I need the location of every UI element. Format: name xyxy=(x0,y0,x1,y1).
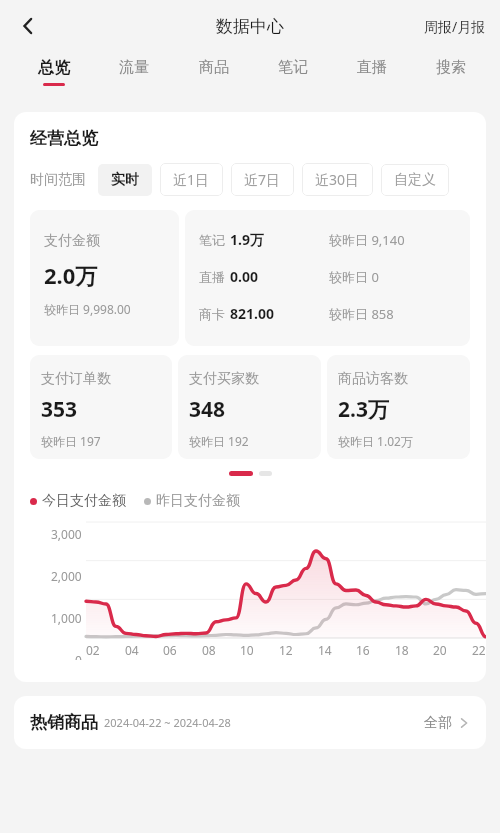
staticText: 笔记 xyxy=(278,58,308,77)
staticText: 昨日支付金额 xyxy=(156,492,240,510)
staticText: 今日支付金额 xyxy=(42,492,126,510)
staticText: 20 xyxy=(433,642,447,658)
staticText: 14 xyxy=(318,642,332,658)
staticText: 较昨日 1.02万 xyxy=(338,433,413,449)
button[interactable]: 支付金额 xyxy=(30,210,179,346)
staticText: 2.3万 xyxy=(338,395,389,424)
staticText: 全部 xyxy=(424,714,452,732)
staticText: 近30日 xyxy=(315,170,360,189)
staticText: 2,000 xyxy=(51,568,82,584)
staticText: 流量 xyxy=(119,58,149,77)
staticText: 数据中心 xyxy=(216,16,284,37)
button[interactable]: 近7日 xyxy=(231,163,294,196)
staticText: 08 xyxy=(202,642,216,658)
staticText: 经营总览 xyxy=(30,128,98,149)
staticText: 笔记 xyxy=(199,232,225,248)
staticText: 04 xyxy=(125,642,139,658)
staticText: 2.0万 xyxy=(44,260,98,290)
staticText: 较昨日 192 xyxy=(189,433,249,449)
staticText: 实时 xyxy=(111,171,139,189)
staticText: 1,000 xyxy=(51,610,82,626)
staticText: 商卡 xyxy=(199,306,225,322)
staticText: 0.00 xyxy=(230,267,258,286)
button[interactable]: 实时 xyxy=(98,164,152,196)
staticText: 支付买家数 xyxy=(189,370,259,388)
staticText: 近7日 xyxy=(244,170,281,189)
staticText: 搜索 xyxy=(436,58,466,77)
button[interactable]: 总览 xyxy=(14,52,94,98)
staticText: 近1日 xyxy=(173,170,210,189)
staticText: 支付订单数 xyxy=(41,370,111,388)
staticText: 商品访客数 xyxy=(338,370,408,388)
staticText: 较昨日 9,998.00 xyxy=(44,301,131,317)
button[interactable]: 流量 xyxy=(94,52,174,98)
staticText: 2024-04-22 ~ 2024-04-28 xyxy=(104,715,231,730)
staticText: 热销商品 xyxy=(30,712,98,733)
staticText: 22 xyxy=(472,642,486,658)
staticText: 直播 xyxy=(199,269,225,285)
staticText: 时间范围 xyxy=(30,171,86,189)
button[interactable]: 直播 xyxy=(332,52,411,98)
staticText: 较昨日 197 xyxy=(41,433,101,449)
button[interactable]: 近30日 xyxy=(302,163,373,196)
staticText: 353 xyxy=(41,395,78,424)
staticText: 自定义 xyxy=(394,171,436,189)
button[interactable]: 热销商品 xyxy=(14,696,486,749)
staticText: 较昨日 9,140 xyxy=(329,231,405,249)
button[interactable]: 搜索 xyxy=(411,52,490,98)
staticText: 06 xyxy=(163,642,177,658)
staticText: 1.9万 xyxy=(230,230,264,249)
staticText: 直播 xyxy=(357,58,387,77)
button[interactable]: 近1日 xyxy=(160,163,223,196)
button[interactable]: 支付买家数 xyxy=(178,355,321,459)
button[interactable]: Back xyxy=(8,6,48,46)
staticText: 348 xyxy=(189,395,226,424)
button[interactable]: 支付订单数 xyxy=(30,355,172,459)
staticText: 10 xyxy=(240,642,254,658)
button[interactable]: 商品 xyxy=(174,52,253,98)
other: More xyxy=(458,717,470,729)
staticText: 0 xyxy=(75,652,82,660)
staticText: 16 xyxy=(356,642,370,658)
staticText: 较昨日 0 xyxy=(329,268,379,286)
staticText: 02 xyxy=(86,642,100,658)
staticText: 18 xyxy=(395,642,409,658)
staticText: 支付金额 xyxy=(44,232,100,250)
button[interactable]: 周报/月报 xyxy=(424,17,486,36)
staticText: 周报/月报 xyxy=(424,17,486,36)
button[interactable]: 自定义 xyxy=(381,164,449,196)
staticText: 12 xyxy=(279,642,293,658)
staticText: 较昨日 858 xyxy=(329,305,394,323)
staticText: 821.00 xyxy=(230,304,274,323)
staticText: 商品 xyxy=(199,58,229,77)
button[interactable]: 笔记 xyxy=(253,52,332,98)
button[interactable]: 笔记 xyxy=(185,210,470,346)
staticText: 总览 xyxy=(38,58,70,78)
staticText: 3,000 xyxy=(51,526,82,542)
button[interactable]: 商品访客数 xyxy=(327,355,470,459)
